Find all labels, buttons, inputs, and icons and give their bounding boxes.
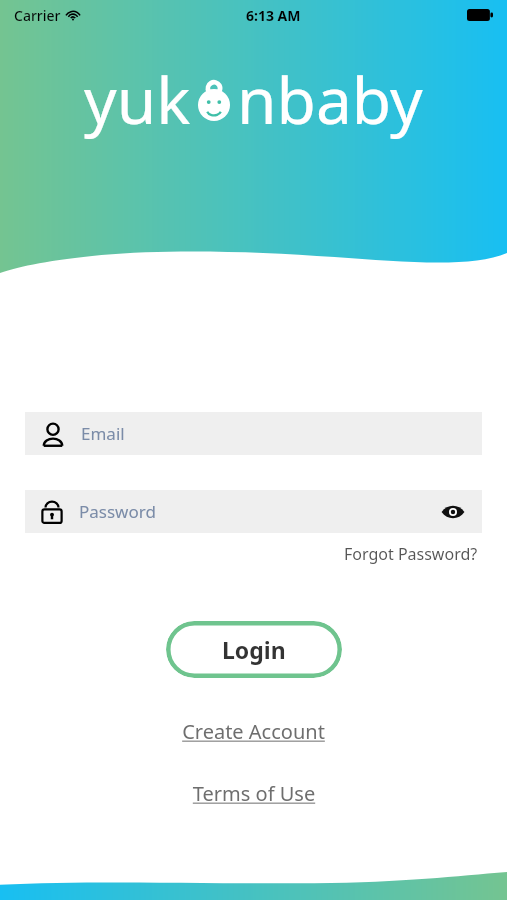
staticText: Login (222, 634, 286, 665)
staticText: Email (81, 422, 125, 445)
button[interactable]: Forgot Password? (340, 539, 482, 569)
button[interactable]: Email (25, 412, 482, 455)
staticText: Password (79, 500, 156, 523)
staticText: yuk (84, 56, 191, 143)
button[interactable]: Create Account (174, 715, 333, 748)
staticText: Forgot Password? (344, 543, 478, 565)
button[interactable]: Password (25, 490, 482, 533)
button[interactable]: Show password (438, 497, 468, 527)
staticText: Create Account (182, 718, 325, 745)
staticText: Carrier (14, 6, 61, 25)
button[interactable]: Login (166, 621, 342, 678)
staticText: nbaby (237, 56, 423, 143)
button[interactable]: Terms of Use (182, 777, 326, 810)
staticText: 6:13 AM (246, 6, 301, 25)
staticText: Terms of Use (190, 780, 318, 807)
